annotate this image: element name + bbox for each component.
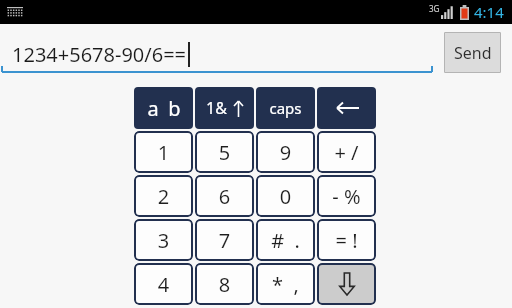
staticText: 6 — [195, 183, 254, 210]
button[interactable]: # . — [256, 219, 315, 261]
button[interactable]: Backspace — [317, 87, 376, 129]
staticText: - % — [317, 183, 376, 210]
button[interactable]: + / — [317, 131, 376, 173]
staticText: # . — [256, 227, 315, 254]
staticText: 0 — [256, 183, 315, 210]
staticText: 1& — [206, 97, 227, 119]
button[interactable]: - % — [317, 175, 376, 217]
button[interactable]: = ! — [317, 219, 376, 261]
button[interactable]: 0 — [256, 175, 315, 217]
staticText: caps — [269, 98, 302, 118]
button[interactable]: Hide keyboard — [317, 263, 376, 305]
staticText: = ! — [317, 227, 376, 254]
staticText: 5 — [195, 139, 254, 166]
button[interactable]: 1234+5678-90/6== — [0, 30, 434, 78]
button[interactable]: 4 — [134, 263, 193, 305]
staticText: 3 — [134, 227, 193, 254]
button[interactable]: 6 — [195, 175, 254, 217]
button[interactable]: 2 — [134, 175, 193, 217]
staticText: * , — [256, 271, 315, 298]
staticText: 4:14 — [474, 2, 504, 22]
staticText: 3G — [429, 3, 440, 14]
button[interactable]: Send — [444, 32, 501, 73]
staticText: 1 — [134, 139, 193, 166]
button[interactable]: Letters — [134, 87, 193, 129]
button[interactable]: Caps — [256, 87, 315, 129]
button[interactable]: 3 — [134, 219, 193, 261]
staticText: 2 — [134, 183, 193, 210]
staticText: + / — [317, 139, 376, 166]
staticText: 4 — [134, 271, 193, 298]
staticText: 1234+5678-90/6== — [12, 41, 187, 68]
button[interactable]: 7 — [195, 219, 254, 261]
button[interactable]: 1 — [134, 131, 193, 173]
button[interactable]: Symbols and shift — [195, 87, 254, 129]
staticText: b — [168, 95, 181, 122]
button[interactable]: 8 — [195, 263, 254, 305]
staticText: Send — [454, 42, 492, 64]
button[interactable]: 9 — [256, 131, 315, 173]
staticText: a — [147, 95, 159, 122]
button[interactable]: 5 — [195, 131, 254, 173]
staticText: 9 — [256, 139, 315, 166]
button[interactable]: * , — [256, 263, 315, 305]
staticText: 7 — [195, 227, 254, 254]
staticText: 8 — [195, 271, 254, 298]
